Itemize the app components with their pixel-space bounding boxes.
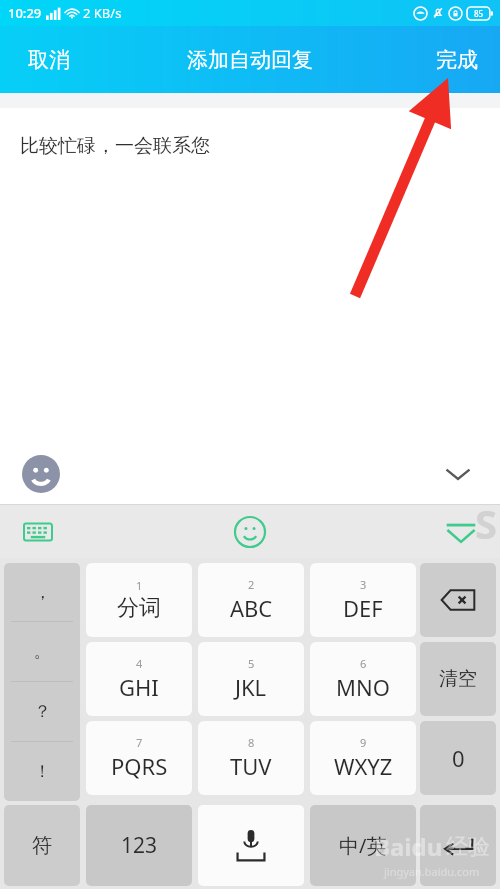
- button[interactable]: 8: [198, 721, 304, 795]
- staticText: 经验: [446, 833, 490, 861]
- staticText: ，: [34, 582, 51, 603]
- button[interactable]: Emoji keyboard: [233, 515, 267, 549]
- button[interactable]: 4: [86, 642, 192, 716]
- button[interactable]: 123: [86, 805, 192, 886]
- staticText: ABC: [230, 593, 273, 623]
- button[interactable]: 9: [310, 721, 416, 795]
- button[interactable]: Collapse: [440, 456, 476, 492]
- staticText: 中/英: [339, 832, 387, 859]
- staticText: 2 KB/s: [83, 4, 122, 22]
- button[interactable]: 取消: [0, 35, 98, 85]
- staticText: 6: [360, 656, 367, 671]
- button[interactable]: 符: [4, 805, 80, 886]
- staticText: 2: [248, 577, 255, 592]
- staticText: 4: [136, 656, 143, 671]
- staticText: Baidu: [374, 830, 443, 863]
- button[interactable]: Backspace: [420, 563, 496, 637]
- staticText: 0: [452, 743, 465, 773]
- button[interactable]: 完成: [414, 35, 500, 85]
- staticText: 符: [32, 833, 52, 858]
- button[interactable]: Enter: [420, 805, 496, 886]
- staticText: PQRS: [111, 751, 168, 781]
- staticText: GHI: [119, 672, 159, 702]
- button[interactable]: 7: [86, 721, 192, 795]
- staticText: 7: [136, 735, 143, 750]
- button[interactable]: Emoji: [22, 455, 60, 493]
- staticText: 。: [34, 641, 51, 662]
- button[interactable]: 1: [86, 563, 192, 637]
- button[interactable]: 6: [310, 642, 416, 716]
- staticText: 1: [136, 578, 143, 593]
- button[interactable]: 中/英: [310, 805, 416, 886]
- staticText: 85: [474, 8, 484, 19]
- staticText: 5: [248, 656, 255, 671]
- button[interactable]: 清空: [420, 642, 496, 716]
- staticText: 取消: [28, 47, 70, 73]
- button[interactable]: 3: [310, 563, 416, 637]
- staticText: 分词: [117, 594, 161, 622]
- staticText: 比较忙碌，一会联系您: [20, 134, 210, 158]
- staticText: WXYZ: [334, 751, 393, 781]
- staticText: ？: [34, 701, 51, 722]
- button[interactable]: 0: [420, 721, 496, 795]
- staticText: 123: [121, 831, 158, 860]
- button[interactable]: Keyboard layout: [20, 517, 56, 547]
- button[interactable]: 2: [198, 563, 304, 637]
- staticText: ！: [34, 761, 51, 782]
- staticText: 添加自动回复: [187, 47, 313, 73]
- staticText: 10:29: [8, 4, 42, 22]
- staticText: TUV: [230, 751, 272, 781]
- button[interactable]: Hide keyboard: [444, 519, 478, 545]
- staticText: jingyan.baidu.com: [384, 864, 480, 879]
- button[interactable]: Space / voice input: [198, 805, 304, 886]
- staticText: JKL: [235, 672, 267, 702]
- staticText: DEF: [343, 593, 383, 623]
- staticText: 9: [360, 735, 367, 750]
- staticText: 8: [248, 735, 255, 750]
- staticText: 完成: [436, 47, 478, 73]
- staticText: MNO: [336, 672, 390, 702]
- staticText: S: [475, 496, 498, 549]
- button[interactable]: 5: [198, 642, 304, 716]
- staticText: 3: [360, 577, 367, 592]
- staticText: 清空: [439, 667, 477, 691]
